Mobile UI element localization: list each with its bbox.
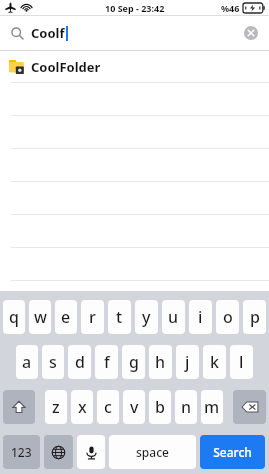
button[interactable]: p <box>243 300 266 334</box>
staticText: u <box>168 306 179 328</box>
staticText: Coolf <box>31 24 65 42</box>
button[interactable]: m <box>201 390 223 424</box>
button[interactable]: l <box>230 345 253 379</box>
staticText: f <box>104 351 110 373</box>
staticText: j <box>185 351 190 373</box>
button[interactable]: s <box>42 345 64 379</box>
button[interactable]: r <box>81 300 104 334</box>
button[interactable]: k <box>203 345 226 379</box>
staticText: s <box>49 351 57 373</box>
button[interactable]: b <box>149 390 171 424</box>
staticText: h <box>155 351 166 373</box>
staticText: c <box>104 396 112 418</box>
button[interactable]: g <box>122 345 145 379</box>
staticText: g <box>129 351 139 373</box>
staticText: q <box>9 306 19 328</box>
staticText: Search <box>213 444 252 460</box>
button[interactable]: d <box>68 345 91 379</box>
button[interactable]: a <box>16 345 38 379</box>
staticText: a <box>22 351 32 373</box>
button[interactable]: Change keyboard language <box>44 435 73 469</box>
button[interactable]: Search <box>200 435 265 469</box>
button[interactable]: u <box>162 300 185 334</box>
button[interactable]: i <box>189 300 212 334</box>
staticText: m <box>204 396 220 418</box>
staticText: d <box>75 351 85 373</box>
staticText: 10 Sep - 23:42 <box>105 2 165 14</box>
staticText: v <box>130 396 139 418</box>
staticText: n <box>181 396 192 418</box>
button[interactable]: f <box>95 345 118 379</box>
staticText: e <box>61 306 71 328</box>
button[interactable]: h <box>149 345 172 379</box>
button[interactable]: o <box>216 300 239 334</box>
button[interactable]: z <box>45 390 67 424</box>
button[interactable]: q <box>3 300 25 334</box>
staticText: x <box>78 396 87 418</box>
button[interactable]: Backspace <box>233 390 266 424</box>
button[interactable]: 123 <box>3 435 40 469</box>
staticText: r <box>89 306 96 328</box>
button[interactable]: CoolFolder <box>0 51 269 82</box>
staticText: space <box>136 444 169 460</box>
staticText: 123 <box>11 444 32 460</box>
button[interactable]: Voice input <box>77 435 105 469</box>
staticText: p <box>250 306 260 328</box>
button[interactable]: e <box>55 300 77 334</box>
button[interactable]: x <box>71 390 93 424</box>
button[interactable]: Shift <box>3 390 35 424</box>
button[interactable]: c <box>97 390 119 424</box>
staticText: i <box>198 306 203 328</box>
button[interactable]: Coolf <box>0 16 269 50</box>
button[interactable]: y <box>135 300 158 334</box>
button[interactable]: Clear search <box>241 23 261 43</box>
button[interactable]: t <box>108 300 131 334</box>
staticText: y <box>142 306 151 328</box>
staticText: t <box>116 306 123 328</box>
staticText: %46 <box>221 2 240 14</box>
staticText: b <box>155 396 165 418</box>
staticText: CoolFolder <box>31 58 101 76</box>
button[interactable]: w <box>29 300 51 334</box>
staticText: w <box>34 306 47 328</box>
button[interactable]: n <box>175 390 197 424</box>
staticText: l <box>239 351 244 373</box>
staticText: z <box>52 396 60 418</box>
staticText: o <box>223 306 233 328</box>
button[interactable]: space <box>109 435 196 469</box>
button[interactable]: j <box>176 345 199 379</box>
button[interactable]: v <box>123 390 145 424</box>
staticText: k <box>210 351 219 373</box>
